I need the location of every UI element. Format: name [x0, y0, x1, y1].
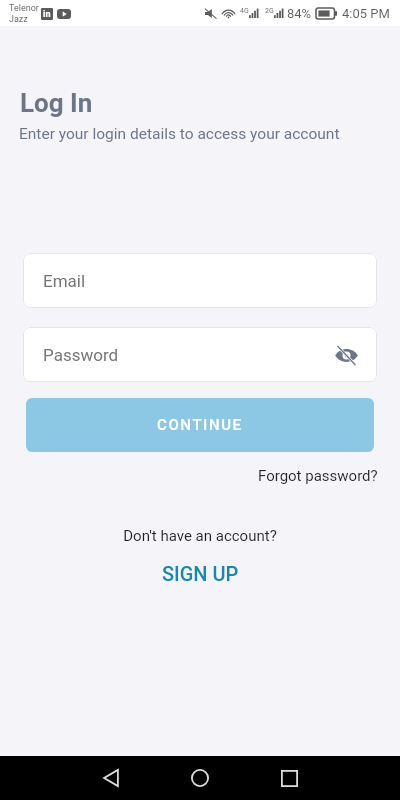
staticText: Forgot password? — [258, 467, 378, 485]
staticText: Telenor — [9, 3, 39, 14]
button[interactable]: Forgot password? — [248, 463, 400, 489]
button[interactable]: Email — [23, 253, 377, 308]
staticText: 4:05 PM — [342, 6, 390, 21]
staticText: Email — [43, 271, 86, 291]
button[interactable]: SIGN UP — [150, 558, 251, 589]
staticText: CONTINUE — [157, 416, 243, 434]
button[interactable]: Recent apps — [261, 756, 317, 800]
staticText: 84% — [287, 6, 312, 21]
staticText: SIGN UP — [162, 562, 239, 585]
staticText: Enter your login details to access your … — [19, 125, 340, 143]
staticText: Jazz — [9, 14, 28, 25]
button[interactable]: Show password — [330, 339, 362, 371]
button[interactable]: Home — [172, 756, 228, 800]
staticText: Password — [43, 345, 119, 365]
staticText: in — [43, 9, 51, 20]
staticText: Log In — [20, 88, 93, 118]
staticText: Don't have an account? — [0, 527, 400, 545]
button[interactable]: Password — [23, 327, 377, 382]
button[interactable]: CONTINUE — [26, 398, 374, 452]
staticText: 2G — [265, 7, 274, 15]
button[interactable]: Back — [83, 756, 139, 800]
staticText: 4G — [240, 7, 249, 15]
